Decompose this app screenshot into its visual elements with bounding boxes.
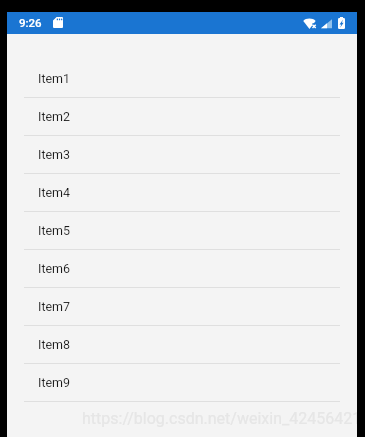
staticText: Item4: [38, 185, 71, 200]
button[interactable]: Item5: [7, 212, 357, 250]
staticText: Item5: [38, 223, 71, 238]
button[interactable]: Item9: [7, 364, 357, 402]
staticText: Item8: [38, 337, 71, 352]
staticText: Item3: [38, 147, 71, 162]
staticText: Item7: [38, 299, 71, 314]
button[interactable]: Item6: [7, 250, 357, 288]
staticText: https://blog.csdn.net/weixin_42456421: [82, 409, 357, 428]
button[interactable]: Item4: [7, 174, 357, 212]
staticText: Item9: [38, 375, 71, 390]
other: Wi-Fi disconnected: [303, 17, 316, 29]
button[interactable]: Item3: [7, 136, 357, 174]
staticText: 9:26: [19, 16, 42, 29]
button[interactable]: Item8: [7, 326, 357, 364]
button[interactable]: Item7: [7, 288, 357, 326]
button[interactable]: Item2: [7, 98, 357, 136]
staticText: Item6: [38, 261, 71, 276]
staticText: Item2: [38, 109, 71, 124]
staticText: Item1: [38, 71, 71, 86]
button[interactable]: Item1: [7, 60, 357, 98]
other: Mobile signal: [321, 17, 332, 29]
